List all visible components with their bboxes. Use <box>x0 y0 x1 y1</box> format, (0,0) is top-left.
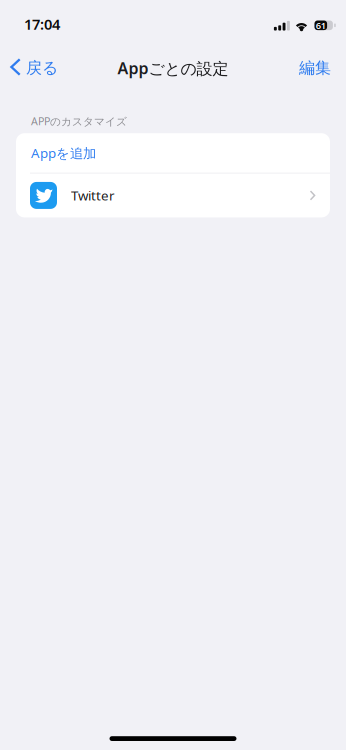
button[interactable]: Appを追加 <box>16 133 330 173</box>
staticText: Twitter <box>71 187 115 204</box>
staticText: 戻る <box>26 58 58 78</box>
staticText: 61 <box>316 19 326 31</box>
staticText: Appごとの設定 <box>117 57 228 79</box>
staticText: 編集 <box>299 58 331 78</box>
staticText: APPのカスタマイズ <box>31 114 127 128</box>
button[interactable]: 戻る <box>0 48 68 88</box>
staticText: 17:04 <box>24 14 60 34</box>
button[interactable]: Twitter <box>16 173 330 217</box>
staticText: Appを追加 <box>31 144 96 162</box>
button[interactable]: 編集 <box>284 48 346 88</box>
